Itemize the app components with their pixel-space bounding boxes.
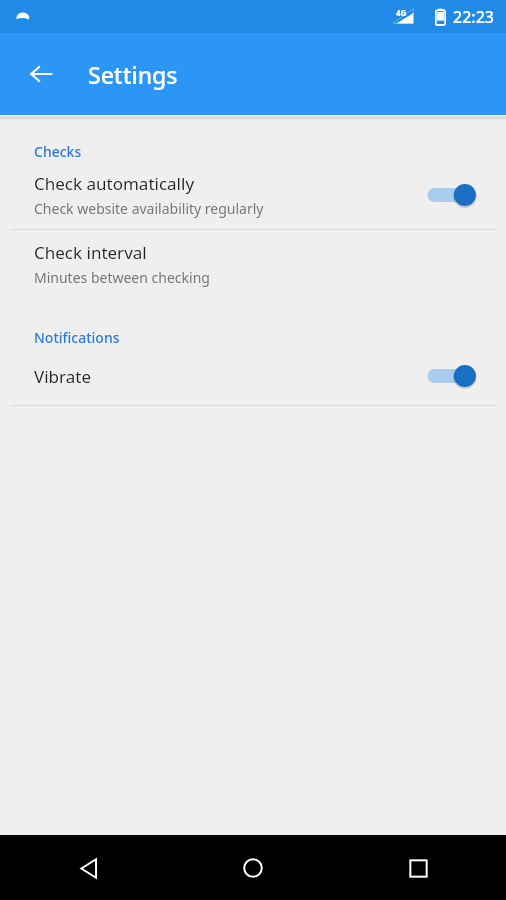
button[interactable]: Home xyxy=(226,841,280,895)
staticText: Check automatically xyxy=(34,172,195,195)
button[interactable]: Check automatically xyxy=(0,161,506,229)
staticText: Check interval xyxy=(34,241,147,264)
button[interactable]: Recent apps xyxy=(391,841,445,895)
staticText: Minutes between checking xyxy=(34,268,210,287)
staticText: Checks xyxy=(34,142,82,161)
staticText: Settings xyxy=(88,59,178,90)
staticText: 4G xyxy=(396,7,407,18)
button[interactable]: Toggle xyxy=(426,178,478,212)
button[interactable]: Vibrate xyxy=(0,347,506,405)
button[interactable]: Back xyxy=(17,50,65,98)
staticText: Notifications xyxy=(34,328,120,347)
button[interactable]: Back xyxy=(61,841,115,895)
staticText: Check website availability regularly xyxy=(34,199,264,218)
button[interactable]: Toggle xyxy=(426,359,478,393)
button[interactable]: Check interval xyxy=(0,230,506,298)
staticText: 22:23 xyxy=(453,6,494,28)
staticText: Vibrate xyxy=(34,365,91,388)
